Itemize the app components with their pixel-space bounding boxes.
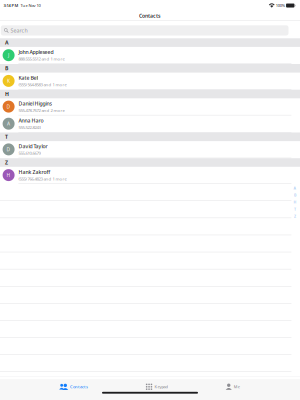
button[interactable]: Contacts [57, 381, 91, 392]
button[interactable]: D [0, 141, 300, 158]
staticText: J [8, 52, 9, 58]
staticText: Z [5, 159, 8, 166]
staticText: Hank Zakroff [18, 168, 50, 175]
staticText: Z [294, 214, 296, 219]
staticText: D [7, 146, 11, 153]
button[interactable]: A [0, 115, 300, 132]
staticText: David Taylor [18, 143, 47, 150]
staticText: 555-522-8243 [18, 124, 40, 130]
staticText: H [294, 200, 297, 205]
staticText: Anna Haro [18, 117, 43, 124]
button[interactable]: K [0, 73, 300, 90]
staticText: Tue Nov 10 [19, 3, 41, 8]
staticText: B [5, 65, 8, 72]
staticText: 888-555-5512 and 1 more [18, 56, 64, 62]
button[interactable]: Me [223, 381, 243, 392]
staticText: B [294, 192, 296, 198]
staticText: T [5, 133, 8, 140]
staticText: A [7, 120, 10, 127]
staticText: John Appleseed [18, 49, 53, 56]
staticText: H [5, 90, 9, 97]
button[interactable]: Keypad [143, 381, 170, 392]
staticText: Kate Bell [18, 74, 38, 81]
staticText: 3:14 PM [4, 3, 19, 8]
staticText: Me [234, 384, 240, 389]
staticText: 555-478-7672 and 2 more [18, 107, 64, 113]
button[interactable]: D [0, 98, 300, 115]
staticText: A [294, 185, 297, 190]
staticText: T [294, 207, 296, 212]
staticText: D [7, 103, 11, 110]
staticText: A [5, 39, 9, 46]
staticText: (555) 564-8583 and 1 more [18, 82, 66, 87]
staticText: 555-610-6679 [18, 150, 40, 156]
staticText: H [7, 172, 11, 178]
staticText: Contacts [70, 384, 88, 389]
button[interactable]: H [0, 167, 300, 184]
staticText: Contacts [139, 12, 161, 19]
staticText: Keypad [154, 384, 167, 389]
staticText: (555) 766-4823 and 1 more [18, 176, 66, 182]
staticText: 100% [275, 3, 285, 8]
button[interactable]: J [0, 47, 300, 64]
staticText: Daniel Higgins [18, 100, 51, 107]
staticText: Search [10, 27, 27, 34]
staticText: K [7, 78, 10, 84]
